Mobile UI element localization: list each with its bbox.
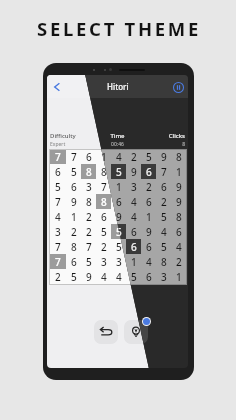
button[interactable]: 4 [50, 209, 66, 224]
button[interactable]: 2 [126, 150, 141, 164]
button[interactable]: Pause [171, 80, 185, 94]
button[interactable]: 5 [66, 269, 81, 284]
button[interactable]: 5 [111, 239, 126, 254]
button[interactable]: 1 [171, 269, 186, 284]
button[interactable]: 2 [171, 254, 186, 269]
button[interactable]: 3 [126, 179, 141, 194]
button[interactable]: 5 [126, 269, 141, 284]
button[interactable]: 4 [111, 150, 126, 164]
button[interactable]: 5 [141, 150, 156, 164]
button[interactable]: 1 [171, 269, 186, 284]
button[interactable]: 6 [156, 179, 171, 194]
button[interactable]: 6 [171, 224, 186, 239]
button[interactable]: Back [49, 79, 65, 95]
button[interactable]: 8 [81, 164, 96, 179]
button[interactable]: 5 [126, 269, 141, 284]
button[interactable]: 2 [171, 254, 186, 269]
button[interactable]: 9 [141, 224, 156, 239]
button[interactable]: 2 [66, 224, 81, 239]
button[interactable]: 4 [111, 269, 126, 284]
button[interactable]: 2 [66, 224, 81, 239]
button[interactable]: 6 [141, 164, 156, 179]
button[interactable]: 5 [50, 179, 66, 194]
button[interactable]: 6 [141, 269, 156, 284]
button[interactable]: 6 [96, 209, 111, 224]
button[interactable]: Hint [124, 320, 148, 344]
button[interactable]: 6 [141, 194, 156, 209]
button[interactable]: 7 [96, 179, 111, 194]
button[interactable]: 8 [171, 150, 186, 164]
button[interactable]: 3 [111, 254, 126, 269]
button[interactable]: 9 [111, 209, 126, 224]
button[interactable]: 5 [96, 224, 111, 239]
button[interactable]: 4 [96, 269, 111, 284]
button[interactable]: 9 [126, 164, 141, 179]
button[interactable]: 6 [66, 179, 81, 194]
button[interactable]: 4 [50, 209, 66, 224]
button[interactable]: 7 [66, 150, 81, 164]
button[interactable]: 5 [50, 179, 66, 194]
button[interactable]: 4 [156, 224, 171, 239]
button[interactable]: 7 [50, 239, 66, 254]
button[interactable]: 7 [50, 254, 66, 269]
button[interactable]: 8 [171, 209, 186, 224]
button[interactable]: 1 [111, 179, 126, 194]
button[interactable]: 2 [141, 179, 156, 194]
button[interactable]: 1 [126, 254, 141, 269]
button[interactable]: 2 [50, 269, 66, 284]
button[interactable]: 5 [66, 164, 81, 179]
button[interactable]: 9 [66, 194, 81, 209]
button[interactable]: 7 [66, 150, 81, 164]
button[interactable]: 4 [171, 239, 186, 254]
button[interactable]: 8 [171, 150, 186, 164]
button[interactable]: 6 [171, 224, 186, 239]
button[interactable]: 4 [141, 254, 156, 269]
button[interactable]: 6 [50, 164, 66, 179]
button[interactable]: 6 [111, 194, 126, 209]
button[interactable]: 3 [126, 179, 141, 194]
button[interactable]: 2 [156, 194, 171, 209]
button[interactable]: 5 [81, 254, 96, 269]
button[interactable]: 5 [66, 164, 81, 179]
button[interactable]: 6 [96, 209, 111, 224]
button[interactable]: 1 [111, 179, 126, 194]
button[interactable]: 1 [96, 150, 111, 164]
button[interactable]: Undo [94, 320, 118, 344]
button[interactable]: 6 [126, 239, 141, 254]
button[interactable]: 9 [81, 269, 96, 284]
button[interactable]: 1 [171, 164, 186, 179]
button[interactable]: 9 [156, 150, 171, 164]
button[interactable]: 8 [66, 239, 81, 254]
button[interactable]: 2 [50, 269, 66, 284]
button[interactable]: 6 [126, 224, 141, 239]
button[interactable]: 6 [66, 179, 81, 194]
button[interactable]: 7 [50, 254, 66, 269]
button[interactable]: 4 [126, 209, 141, 224]
button[interactable]: 7 [50, 239, 66, 254]
button[interactable]: 5 [156, 239, 171, 254]
button[interactable]: 9 [171, 194, 186, 209]
button[interactable]: 9 [66, 194, 81, 209]
button[interactable]: 3 [81, 179, 96, 194]
button[interactable]: 6 [50, 164, 66, 179]
button[interactable]: Back [49, 79, 65, 95]
button[interactable]: 5 [111, 224, 126, 239]
button[interactable]: 2 [81, 209, 96, 224]
button[interactable]: 4 [111, 269, 126, 284]
button[interactable]: 5 [141, 150, 156, 164]
button[interactable]: 5 [111, 224, 126, 239]
button[interactable]: 1 [141, 209, 156, 224]
button[interactable]: 2 [81, 209, 96, 224]
button[interactable]: 1 [96, 150, 111, 164]
button[interactable]: 2 [141, 179, 156, 194]
button[interactable]: 7 [50, 194, 66, 209]
button[interactable]: 4 [156, 224, 171, 239]
button[interactable]: 8 [96, 194, 111, 209]
button[interactable]: 9 [171, 179, 186, 194]
button[interactable]: 2 [81, 224, 96, 239]
button[interactable]: 8 [81, 194, 96, 209]
button[interactable]: 5 [156, 209, 171, 224]
button[interactable]: 9 [141, 224, 156, 239]
button[interactable]: 3 [96, 254, 111, 269]
button[interactable]: 4 [111, 150, 126, 164]
